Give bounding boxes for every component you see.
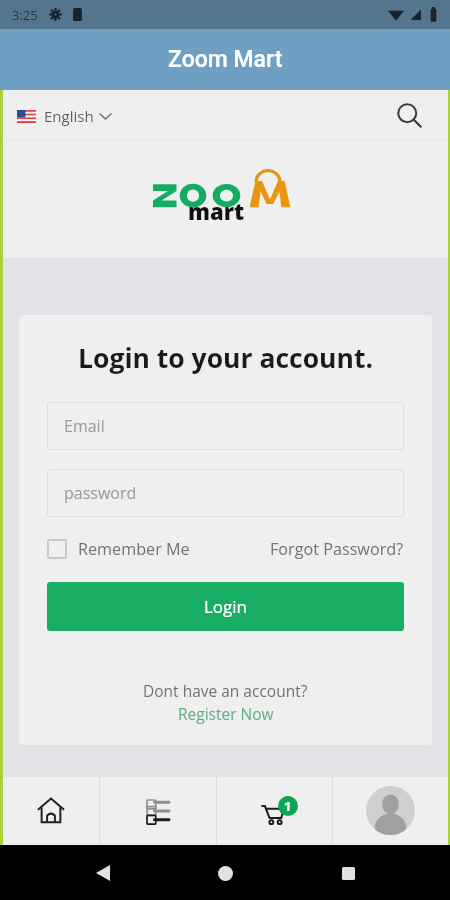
button[interactable]: Home (205, 853, 245, 893)
staticText: Zoom Mart (168, 46, 283, 73)
button[interactable]: Back (83, 853, 123, 893)
staticText: 1 (284, 797, 292, 815)
staticText: 3:25 (12, 6, 38, 24)
button[interactable]: Recents (328, 853, 368, 893)
button[interactable]: Home (3, 776, 99, 845)
button[interactable]: Remember Me (47, 535, 190, 563)
button[interactable]: Register Now (178, 703, 274, 724)
staticText: password (64, 482, 137, 504)
staticText: Register Now (178, 703, 274, 724)
button[interactable]: password (47, 469, 404, 517)
button[interactable]: Login (47, 582, 404, 631)
staticText: Login (204, 595, 248, 618)
button[interactable]: Profile (333, 776, 448, 845)
staticText: English (44, 106, 94, 126)
button[interactable]: Email (47, 402, 404, 450)
button[interactable]: Categories (100, 776, 216, 845)
staticText: Forgot Password? (270, 538, 404, 560)
staticText: mart (188, 196, 245, 226)
staticText: Dont have an account? (143, 680, 308, 701)
button[interactable]: Search (392, 98, 428, 134)
button[interactable]: Forgot Password? (270, 535, 404, 563)
staticText: Login to your account. (47, 340, 404, 376)
staticText: Remember Me (78, 538, 190, 560)
staticText: Email (64, 415, 105, 437)
button[interactable]: Cart (217, 776, 332, 845)
button[interactable]: English (13, 98, 115, 134)
